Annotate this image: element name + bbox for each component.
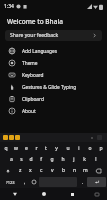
button[interactable]: d [26,155,36,164]
button[interactable]: Comma [20,177,29,187]
button[interactable]: q [1,144,11,153]
button[interactable]: Home [29,188,58,200]
staticText: f [40,156,42,163]
button[interactable]: u [62,144,73,153]
button[interactable]: Emoji suggestion [3,135,8,140]
button[interactable]: s [16,155,26,164]
button[interactable]: y [51,144,62,153]
button[interactable]: e [21,144,31,153]
button[interactable]: Period [78,177,87,187]
button[interactable]: r [31,144,41,153]
staticText: r [35,145,38,152]
button[interactable]: x [25,166,36,175]
staticText: y [55,145,58,152]
button[interactable]: n [69,166,80,175]
staticText: c [40,167,43,174]
button[interactable]: Share your feedback [5,30,102,41]
button[interactable]: Shift [2,166,14,175]
button[interactable]: a [6,155,16,164]
staticText: w [14,145,18,152]
button[interactable]: g [46,155,57,164]
staticText: b [62,167,66,174]
button[interactable]: b [58,166,69,175]
button[interactable]: Emoji [29,177,38,187]
button[interactable]: Enter [87,177,106,187]
staticText: o [88,145,92,152]
staticText: t [45,145,47,152]
staticText: Gestures & Glide Typing [22,84,77,91]
staticText: ?123 [6,180,15,185]
staticText: j [73,156,75,163]
button[interactable]: Keyboard switcher [87,188,107,200]
button[interactable]: o [84,144,95,153]
staticText: p [99,145,103,152]
button[interactable]: m [80,166,91,175]
staticText: s [20,156,23,163]
button[interactable]: Theme [0,57,107,69]
button[interactable]: Clipboard [0,93,107,105]
button[interactable]: Emoji suggestion [9,135,14,140]
button[interactable]: Keyboard [0,69,107,81]
staticText: k [83,156,86,163]
button[interactable]: Add Languages [0,45,107,57]
staticText: e [25,145,28,152]
staticText: z [19,167,22,174]
button[interactable]: f [36,155,46,164]
button[interactable]: l [90,155,101,164]
staticText: Clipboard [22,96,44,103]
staticText: Keyboard [22,72,44,79]
button[interactable]: Backspace [92,166,105,175]
button[interactable]: Emoji suggestion [15,135,20,140]
staticText: a [10,156,13,163]
button[interactable]: Back [0,188,29,200]
button[interactable]: k [79,155,90,164]
button[interactable]: c [36,166,47,175]
staticText: v [51,167,54,174]
staticText: About [22,108,36,115]
button[interactable]: p [95,144,106,153]
staticText: g [50,156,54,163]
button[interactable]: ?123 [1,177,20,187]
staticText: d [29,156,33,163]
button[interactable]: t [41,144,51,153]
button[interactable]: i [73,144,84,153]
staticText: u [66,145,70,152]
staticText: Theme [22,60,38,67]
button[interactable]: Recents [58,188,87,200]
button[interactable]: h [57,155,68,164]
staticText: m [83,167,88,174]
button[interactable]: v [47,166,58,175]
button[interactable]: z [15,166,25,175]
button[interactable]: w [11,144,21,153]
staticText: , [24,179,26,186]
button[interactable]: Voice input [90,136,94,140]
staticText: . [82,179,84,186]
staticText: n [73,167,77,174]
staticText: i [78,145,80,152]
staticText: q [4,145,8,152]
staticText: x [29,167,32,174]
staticText: Share your feedback [10,32,59,39]
button[interactable]: About [0,105,107,117]
button[interactable]: Gestures & Glide Typing [0,81,107,93]
staticText: Welcome to Bhala [7,17,63,26]
staticText: l [95,156,97,163]
staticText: 1:34 [4,3,14,10]
staticText: h [61,156,65,163]
button[interactable]: j [68,155,79,164]
staticText: Add Languages [22,48,57,55]
